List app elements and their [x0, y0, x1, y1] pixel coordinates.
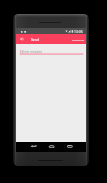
- button[interactable]: Back: [29, 142, 38, 152]
- button[interactable]: Navigate up: [17, 34, 27, 44]
- staticText: CONTINUE: [72, 39, 84, 42]
- staticText: Enter recipient: [22, 50, 42, 54]
- button[interactable]: Recents: [65, 142, 74, 152]
- staticText: 13:06: [74, 29, 83, 34]
- button[interactable]: Home: [47, 142, 56, 152]
- button[interactable]: Enter recipient: [16, 45, 86, 56]
- staticText: Send: [31, 37, 40, 42]
- button[interactable]: CONTINUE: [72, 34, 84, 44]
